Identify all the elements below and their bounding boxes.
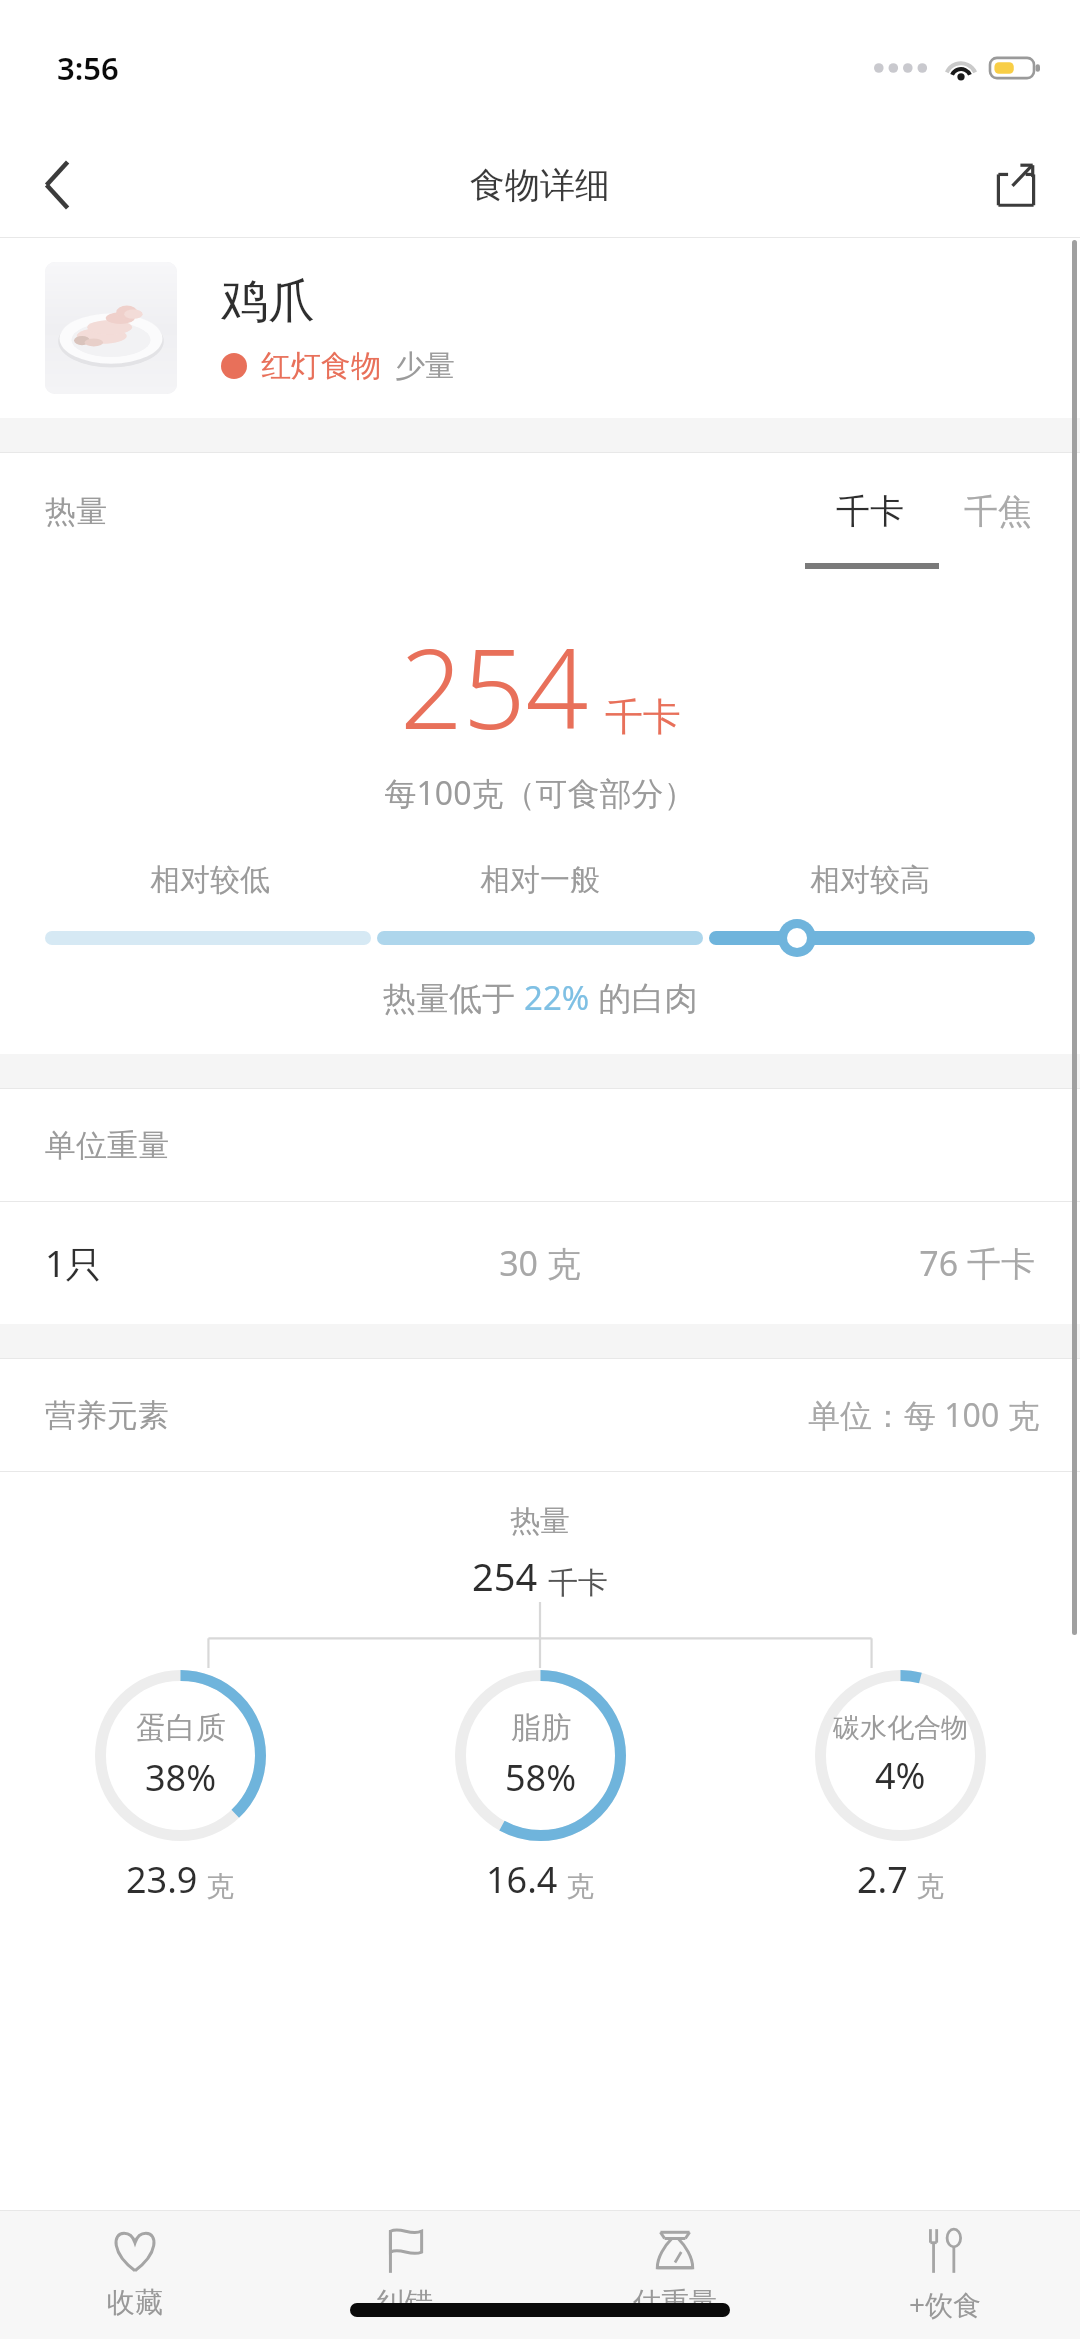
staticText: 76 千卡 <box>705 1240 1035 1286</box>
staticText: 254 <box>400 611 589 761</box>
staticText: 的白肉 <box>590 975 698 1020</box>
staticText: 22% <box>524 975 590 1020</box>
staticText: 23.9 <box>126 1855 198 1904</box>
staticText: 254 <box>472 1550 538 1602</box>
staticText: 克 <box>916 1869 944 1904</box>
button[interactable]: 碳水化合物 <box>720 1668 1080 1904</box>
staticText: 热量 <box>45 492 107 531</box>
button[interactable]: 千卡 <box>824 480 916 543</box>
staticText: 相对较高 <box>705 861 1035 899</box>
staticText: 相对较低 <box>45 861 375 899</box>
button[interactable]: 千焦 <box>952 480 1044 543</box>
staticText: 鸡爪 <box>221 272 315 331</box>
staticText: 每100克（可食部分） <box>0 771 1080 815</box>
staticText: 热量 <box>0 1502 1080 1540</box>
button[interactable]: 纠错 <box>270 2211 540 2339</box>
staticText: 脂肪 <box>511 1709 571 1747</box>
staticText: 千焦 <box>964 490 1032 533</box>
staticText: 克 <box>206 1869 234 1904</box>
staticText: 16.4 <box>486 1855 558 1904</box>
button[interactable]: 鸡爪 <box>0 238 1080 418</box>
staticText: 3:56 <box>57 47 119 89</box>
button[interactable]: 1只 <box>0 1202 1080 1324</box>
staticText: 红灯食物 <box>261 347 381 385</box>
staticText: 蛋白质 <box>136 1709 226 1747</box>
staticText: 4% <box>875 1751 926 1800</box>
staticText: 30 克 <box>375 1240 705 1286</box>
staticText: 单位重量 <box>45 1126 169 1165</box>
staticText: +饮食 <box>909 2285 982 2323</box>
button[interactable]: Back <box>22 149 94 221</box>
staticText: 营养元素 <box>45 1396 169 1435</box>
staticText: 2.7 <box>857 1855 908 1904</box>
staticText: 克 <box>566 1869 594 1904</box>
staticText: 千卡 <box>605 693 681 741</box>
staticText: 58% <box>505 1753 577 1802</box>
staticText: 1只 <box>45 1239 375 1288</box>
staticText: 纠错 <box>377 2285 433 2320</box>
staticText: 单位：每 100 克 <box>808 1393 1040 1437</box>
staticText: 千卡 <box>836 490 904 533</box>
staticText: 千卡 <box>548 1564 608 1602</box>
staticText: 38% <box>145 1753 217 1802</box>
button[interactable]: 估重量 <box>540 2211 810 2339</box>
staticText: 食物详细 <box>470 163 610 207</box>
staticText: 碳水化合物 <box>833 1711 968 1745</box>
staticText: 少量 <box>395 347 455 385</box>
staticText: 相对一般 <box>375 861 705 899</box>
button[interactable]: 蛋白质 <box>0 1668 360 1904</box>
button[interactable]: 脂肪 <box>360 1668 720 1904</box>
staticText: 收藏 <box>107 2285 163 2320</box>
button[interactable]: Share <box>978 147 1054 223</box>
button[interactable]: +饮食 <box>810 2211 1080 2339</box>
staticText: 热量低于 <box>383 975 524 1020</box>
staticText: 估重量 <box>633 2285 717 2320</box>
button[interactable]: 收藏 <box>0 2211 270 2339</box>
